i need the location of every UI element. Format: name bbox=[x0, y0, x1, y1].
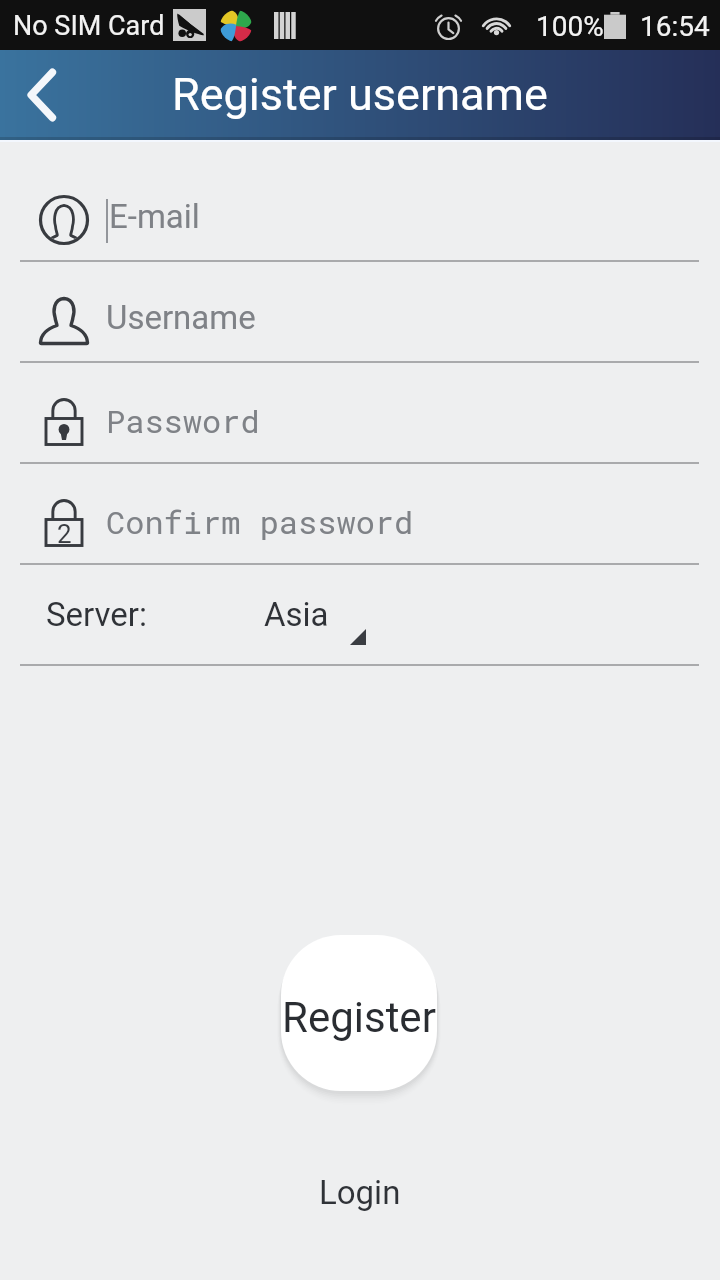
staticText: Register username bbox=[172, 68, 548, 121]
staticText: Password bbox=[106, 399, 260, 441]
staticText: Username bbox=[106, 298, 256, 337]
button[interactable]: Login bbox=[280, 1157, 440, 1227]
button[interactable]: E-mail bbox=[0, 140, 720, 262]
staticText: Register bbox=[282, 993, 436, 1042]
button[interactable]: Username bbox=[0, 262, 720, 363]
button[interactable]: Register bbox=[281, 935, 437, 1091]
button[interactable]: 2 bbox=[0, 464, 720, 565]
staticText: Server: bbox=[46, 595, 148, 634]
staticText: Asia bbox=[264, 595, 329, 634]
staticText: E-mail bbox=[109, 197, 200, 236]
button[interactable]: Server: bbox=[0, 565, 720, 666]
staticText: Confirm password bbox=[106, 500, 414, 542]
button[interactable]: Back bbox=[8, 50, 80, 140]
staticText: 16:54 bbox=[640, 10, 710, 43]
staticText: 100% bbox=[536, 10, 604, 43]
staticText: 2 bbox=[57, 519, 72, 549]
staticText: Login bbox=[319, 1173, 401, 1212]
button[interactable]: Password bbox=[0, 363, 720, 464]
staticText: No SIM Card bbox=[13, 10, 165, 42]
